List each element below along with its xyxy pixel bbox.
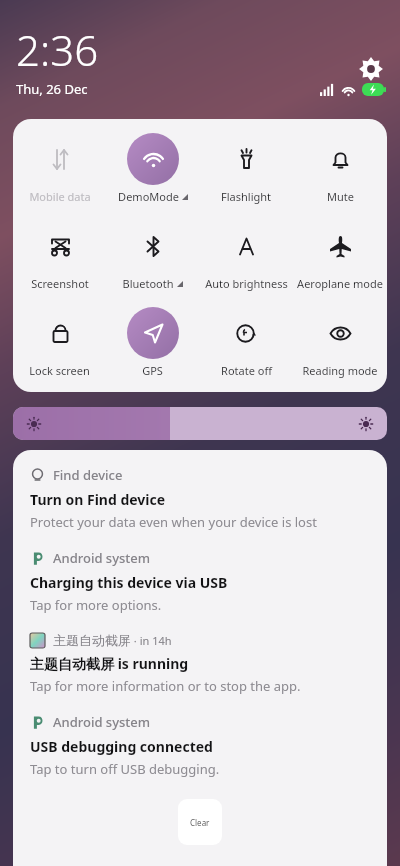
staticText: Mute bbox=[327, 189, 354, 204]
staticText: 主题自动截屏 is running bbox=[30, 654, 189, 673]
staticText: Android system bbox=[53, 713, 151, 731]
staticText: Clear bbox=[190, 817, 210, 828]
button[interactable]: Find device bbox=[30, 466, 373, 531]
button[interactable]: Mobile data bbox=[13, 133, 106, 204]
button[interactable]: GPS bbox=[106, 307, 199, 378]
button[interactable]: Flashlight bbox=[199, 133, 293, 204]
button[interactable]: Android system bbox=[30, 549, 373, 614]
button[interactable]: Screenshot bbox=[13, 220, 106, 291]
button[interactable]: Rotate off bbox=[199, 307, 293, 378]
button[interactable]: Aeroplane mode bbox=[293, 220, 387, 291]
button[interactable]: Lock screen bbox=[13, 307, 106, 378]
staticText: Rotate off bbox=[221, 363, 272, 378]
staticText: Aeroplane mode bbox=[297, 276, 383, 291]
staticText: Lock screen bbox=[29, 363, 90, 378]
staticText: Mobile data bbox=[29, 189, 91, 204]
staticText: 2:36 bbox=[16, 21, 99, 78]
button[interactable]: Clear bbox=[178, 799, 222, 845]
staticText: GPS bbox=[142, 363, 163, 378]
staticText: · in 14h bbox=[131, 633, 172, 648]
staticText: Turn on Find device bbox=[30, 490, 166, 509]
button[interactable]: Settings bbox=[358, 56, 384, 82]
button[interactable]: Auto brightness bbox=[199, 220, 293, 291]
staticText: Auto brightness bbox=[205, 276, 288, 291]
staticText: Flashlight bbox=[221, 189, 271, 204]
staticText: Thu, 26 Dec bbox=[16, 80, 88, 98]
staticText: Reading mode bbox=[302, 363, 378, 378]
button[interactable]: DemoMode bbox=[106, 133, 199, 204]
button[interactable]: Reading mode bbox=[293, 307, 387, 378]
staticText: Tap to turn off USB debugging. bbox=[30, 760, 220, 778]
button[interactable]: Brightness bbox=[13, 407, 387, 440]
button[interactable]: Android system bbox=[30, 713, 373, 778]
staticText: Protect your data even when your device … bbox=[30, 513, 317, 531]
button[interactable]: Mute bbox=[293, 133, 387, 204]
staticText: DemoMode bbox=[118, 189, 179, 204]
staticText: Screenshot bbox=[31, 276, 89, 291]
button[interactable]: 主题自动截屏 bbox=[30, 632, 373, 695]
staticText: 主题自动截屏 bbox=[53, 632, 131, 648]
staticText: Find device bbox=[53, 466, 123, 484]
staticText: Tap for more options. bbox=[30, 596, 162, 614]
staticText: Charging this device via USB bbox=[30, 573, 228, 592]
staticText: Bluetooth bbox=[122, 276, 174, 291]
staticText: USB debugging connected bbox=[30, 737, 213, 756]
button[interactable]: Bluetooth bbox=[106, 220, 199, 291]
staticText: Tap for more information or to stop the … bbox=[30, 677, 301, 695]
staticText: Android system bbox=[53, 549, 151, 567]
